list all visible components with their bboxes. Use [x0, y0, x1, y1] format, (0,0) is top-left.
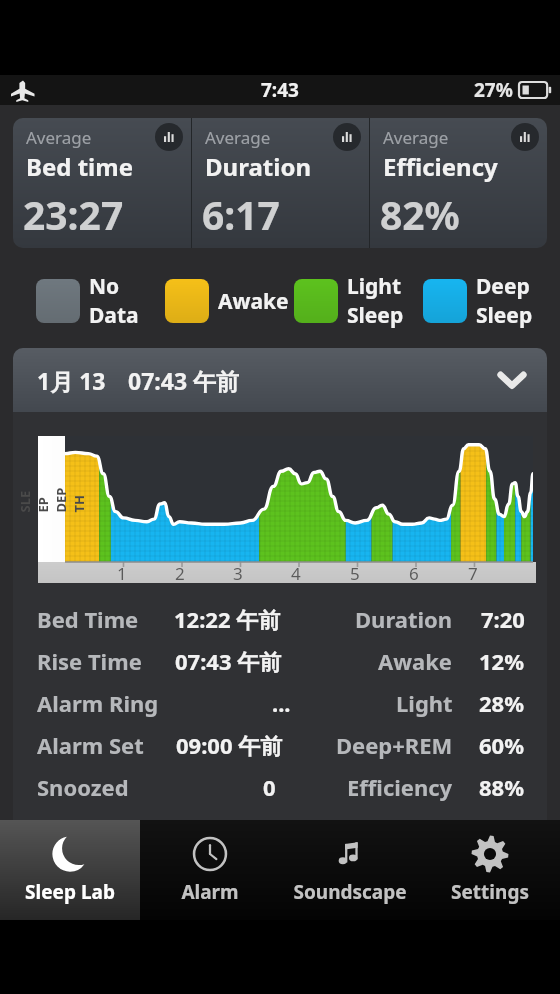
staticText: 0 [263, 772, 276, 802]
staticText: 60% [479, 730, 525, 760]
button[interactable]: Average [13, 118, 191, 248]
button[interactable]: Settings [420, 820, 560, 920]
staticText: 27% [474, 77, 513, 103]
button[interactable]: Soundscape [280, 820, 420, 920]
button[interactable]: Awake [165, 272, 294, 330]
staticText: Settings [451, 879, 529, 905]
staticText: Alarm Ring [37, 688, 159, 718]
button[interactable]: Alarm [140, 820, 280, 920]
button[interactable]: Show chart [511, 123, 539, 151]
staticText: Efficiency [347, 772, 453, 802]
staticText: 28% [479, 688, 525, 718]
button[interactable]: No [36, 272, 165, 330]
button[interactable]: Alarm Set [37, 724, 525, 766]
staticText: Awake [378, 646, 453, 676]
staticText: Average [205, 126, 271, 149]
button[interactable]: Snoozed [37, 766, 525, 808]
staticText: Bed time [26, 150, 134, 183]
button[interactable]: Alarm Ring [37, 682, 525, 724]
button[interactable]: Show chart [155, 123, 183, 151]
button[interactable]: Average [192, 118, 369, 248]
button[interactable]: Rise Time [37, 640, 525, 682]
staticText: 23:27 [23, 188, 124, 241]
staticText: 88% [479, 772, 525, 802]
staticText: Snoozed [37, 772, 129, 802]
staticText: Bed Time [37, 604, 139, 634]
staticText: 2 [175, 562, 185, 583]
staticText: Sleep Lab [25, 879, 115, 905]
staticText: 09:00 午前 [176, 730, 283, 760]
staticText: Awake [218, 287, 289, 316]
staticText: Data [89, 301, 139, 330]
button[interactable]: Sleep Lab [0, 820, 140, 920]
staticText: Rise Time [37, 646, 142, 676]
button[interactable]: Average [370, 118, 547, 248]
staticText: Light [396, 688, 453, 718]
staticText: 7:20 [481, 604, 525, 634]
staticText: 12:22 午前 [174, 604, 281, 634]
staticText: Alarm Set [37, 730, 144, 760]
staticText: 5 [350, 562, 360, 583]
staticText: ... [272, 688, 291, 718]
staticText: Sleep [476, 301, 533, 330]
staticText: 3 [233, 562, 243, 583]
staticText: 4 [291, 562, 301, 583]
button[interactable]: Light [294, 272, 423, 330]
staticText: 1月 13 [37, 365, 106, 396]
staticText: Soundscape [293, 879, 407, 905]
staticText: 7 [468, 562, 478, 583]
button[interactable]: Bed Time [37, 598, 525, 640]
staticText: 7:43 [261, 77, 299, 103]
staticText: SLEEP DEPTH [15, 485, 87, 512]
staticText: 07:43 午前 [175, 646, 282, 676]
staticText: Deep+REM [336, 730, 453, 760]
staticText: No [89, 272, 120, 301]
staticText: Alarm [181, 879, 239, 905]
staticText: Average [383, 126, 449, 149]
staticText: Deep [476, 272, 530, 301]
staticText: Efficiency [383, 150, 498, 183]
staticText: 82% [380, 188, 460, 241]
staticText: 07:43 午前 [128, 365, 240, 396]
button[interactable]: 1月 13 [13, 348, 547, 412]
button[interactable]: Show chart [333, 123, 361, 151]
staticText: Duration [355, 604, 453, 634]
staticText: 6 [409, 562, 419, 583]
staticText: Light [347, 272, 402, 301]
staticText: 12% [479, 646, 525, 676]
staticText: Duration [205, 150, 311, 183]
staticText: 1 [117, 562, 127, 583]
staticText: 6:17 [202, 188, 280, 241]
staticText: Average [26, 126, 92, 149]
button[interactable]: Deep [423, 272, 552, 330]
staticText: Sleep [347, 301, 404, 330]
